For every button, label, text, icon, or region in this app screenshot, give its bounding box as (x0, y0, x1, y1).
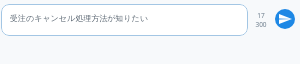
staticText: 17 (257, 11, 265, 20)
button[interactable]: Send (275, 9, 295, 29)
button[interactable]: 受注のキャンセル処理方法が知りたい (1, 4, 248, 36)
staticText: 受注のキャンセル処理方法が知りたい (10, 13, 148, 23)
staticText: 300 (255, 20, 267, 29)
